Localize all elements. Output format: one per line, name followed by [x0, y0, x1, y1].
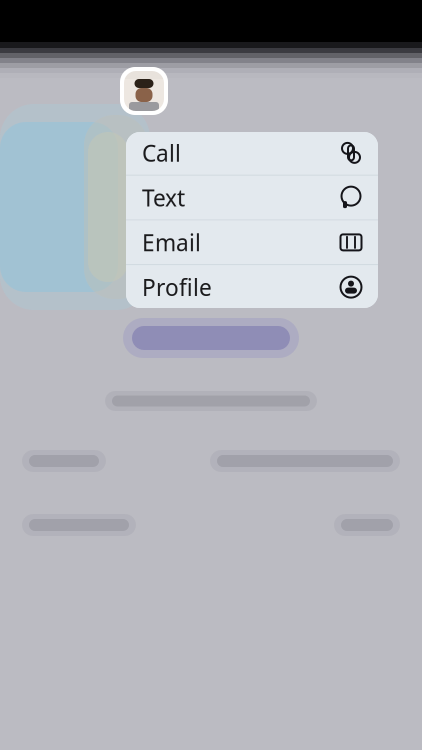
button[interactable]: Text [126, 176, 378, 220]
button[interactable]: Email [126, 220, 378, 264]
staticText: Email [142, 227, 201, 257]
staticText: Call [142, 138, 181, 168]
button[interactable]: Profile [126, 265, 378, 309]
button[interactable]: Call [126, 131, 378, 175]
button[interactable]: Contact photo [120, 67, 168, 115]
staticText: Profile [142, 272, 212, 302]
staticText: Text [142, 183, 185, 213]
